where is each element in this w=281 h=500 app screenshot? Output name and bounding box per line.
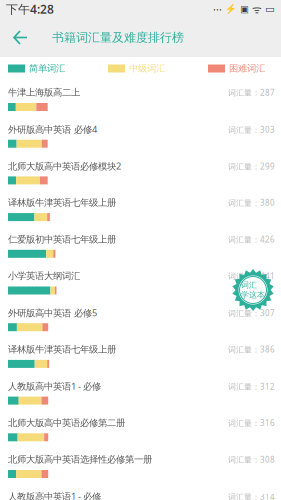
- staticText: 简单词汇: [29, 63, 65, 74]
- staticText: 词汇量：441: [228, 271, 275, 281]
- staticText: 词汇量：312: [228, 381, 275, 392]
- staticText: 书籍词汇量及难度排行榜: [52, 30, 184, 45]
- staticText: 困难词汇: [229, 63, 265, 74]
- button[interactable]: 外研版高中英语 必修4: [0, 123, 281, 159]
- staticText: 牛津上海版高二上: [8, 87, 80, 98]
- staticText: 外研版高中英语 必修5: [8, 306, 97, 319]
- button[interactable]: 北师大版高中英语选择性必修第一册: [0, 453, 281, 490]
- staticText: 词汇量：303: [228, 124, 275, 135]
- staticText: 词汇量：308: [228, 454, 275, 465]
- staticText: 词汇量：314: [228, 491, 275, 500]
- staticText: 中级词汇: [129, 63, 165, 74]
- staticText: ···: [213, 2, 222, 16]
- staticText: ⚡: [225, 4, 237, 14]
- staticText: 小学英语大纲词汇: [8, 270, 80, 282]
- button[interactable]: 译林版牛津英语七年级上册: [0, 196, 281, 233]
- staticText: 仁爱版初中英语七年级上册: [8, 234, 116, 245]
- button[interactable]: 人教版高中英语1 - 必修: [0, 380, 281, 416]
- staticText: 人教版高中英语1 - 必修: [8, 380, 101, 392]
- staticText: 译林版牛津英语七年级上册: [8, 197, 116, 208]
- staticText: 译林版牛津英语七年级上册: [8, 344, 116, 355]
- staticText: ▭: [265, 3, 275, 15]
- staticText: ▣: [240, 4, 249, 14]
- staticText: 词汇量：287: [228, 87, 275, 98]
- staticText: 词汇量：307: [228, 308, 275, 318]
- staticText: 北师大版高中英语选择性必修第一册: [8, 454, 152, 465]
- button[interactable]: 牛津上海版高二上: [0, 86, 281, 123]
- staticText: 词汇 学这本: [241, 280, 265, 300]
- staticText: 词汇量：386: [228, 344, 275, 355]
- staticText: 人教版高中英语1 - 必修: [8, 490, 101, 500]
- staticText: 外研版高中英语 必修4: [8, 123, 97, 135]
- button[interactable]: 小学英语大纲词汇: [0, 269, 281, 306]
- staticText: 下午4:28: [6, 1, 54, 17]
- button[interactable]: 返回: [0, 18, 38, 57]
- button[interactable]: 仁爱版初中英语七年级上册: [0, 233, 281, 269]
- staticText: 词汇量：426: [228, 234, 275, 245]
- button[interactable]: 译林版牛津英语七年级上册: [0, 343, 281, 380]
- button[interactable]: 人教版高中英语1 - 必修: [0, 490, 281, 500]
- staticText: 词汇量：380: [228, 197, 275, 208]
- staticText: 词汇量：316: [228, 418, 275, 428]
- button[interactable]: 北师大版高中英语必修第二册: [0, 416, 281, 453]
- button[interactable]: 外研版高中英语 必修5: [0, 306, 281, 343]
- button[interactable]: 北师大版高中英语必修模块2: [0, 159, 281, 196]
- staticText: 词汇量：299: [228, 161, 275, 172]
- staticText: 北师大版高中英语必修模块2: [8, 160, 121, 172]
- staticText: ᯤ: [252, 2, 262, 16]
- staticText: 北师大版高中英语必修第二册: [8, 417, 125, 429]
